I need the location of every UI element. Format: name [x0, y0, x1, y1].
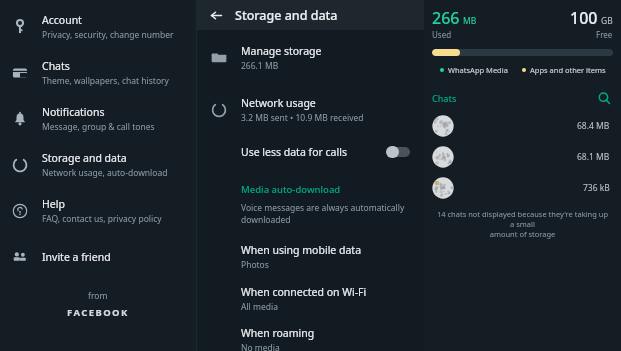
staticText: When using mobile data	[241, 243, 362, 257]
button[interactable]: Account	[0, 8, 196, 46]
staticText: Help	[42, 197, 65, 211]
staticText: Theme, wallpapers, chat history	[42, 75, 169, 87]
staticText: 68.1 MB	[577, 151, 610, 163]
staticText: WhatsApp Media	[448, 65, 508, 75]
staticText: Use less data for calls	[241, 145, 347, 159]
button[interactable]: When roaming	[197, 326, 424, 351]
staticText: 14 chats not displayed because they're t…	[436, 209, 609, 239]
button[interactable]: Use less data for calls	[197, 137, 424, 167]
staticText: Message, group & call tones	[42, 121, 155, 133]
staticText: 266	[432, 7, 460, 29]
staticText: 736 kB	[583, 182, 610, 194]
staticText: Notifications	[42, 105, 105, 119]
staticText: Voice messages are always automatically …	[241, 202, 405, 226]
staticText: Free	[596, 29, 613, 40]
staticText: Invite a friend	[42, 250, 111, 264]
button[interactable]: When connected on Wi-Fi	[197, 284, 424, 314]
staticText: Network usage	[241, 96, 316, 110]
staticText: Media auto-download	[241, 183, 341, 196]
button[interactable]: Back	[205, 4, 227, 26]
button[interactable]: Manage storage	[197, 41, 424, 75]
button[interactable]: Network usage	[197, 93, 424, 127]
staticText: Apps and other items	[530, 65, 606, 75]
button[interactable]: Storage and data	[0, 146, 196, 184]
staticText: Privacy, security, change number	[42, 29, 174, 41]
staticText: from	[88, 290, 108, 302]
staticText: Storage and data	[42, 151, 127, 165]
staticText: FAQ, contact us, privacy policy	[42, 213, 162, 225]
button[interactable]: 68.4 MB	[432, 113, 613, 139]
button[interactable]: 68.1 MB	[432, 144, 613, 170]
staticText: When roaming	[241, 326, 315, 340]
staticText: 3.2 MB sent • 10.9 MB received	[241, 112, 364, 124]
staticText: FACEBOOK	[67, 306, 129, 319]
staticText: When connected on Wi-Fi	[241, 285, 367, 299]
button[interactable]: Search	[595, 89, 613, 107]
button[interactable]: Help	[0, 192, 196, 230]
staticText: MB	[463, 15, 477, 27]
staticText: Used	[432, 29, 452, 40]
button[interactable]: When using mobile data	[197, 242, 424, 272]
staticText: Manage storage	[241, 44, 322, 58]
staticText: GB	[601, 15, 613, 27]
button[interactable]: Chats	[0, 54, 196, 92]
staticText: No media	[241, 342, 280, 351]
staticText: 266.1 MB	[241, 60, 279, 72]
button[interactable]: Notifications	[0, 100, 196, 138]
staticText: Photos	[241, 259, 269, 271]
staticText: 100	[570, 7, 598, 29]
staticText: Storage and data	[235, 7, 338, 24]
staticText: All media	[241, 301, 278, 313]
staticText: Account	[42, 13, 82, 27]
staticText: 68.4 MB	[577, 120, 610, 132]
staticText: Chats	[432, 92, 457, 104]
button[interactable]: 736 kB	[432, 175, 613, 201]
button[interactable]: Invite a friend	[0, 240, 196, 274]
staticText: Chats	[42, 59, 70, 73]
staticText: Network usage, auto-download	[42, 167, 168, 179]
